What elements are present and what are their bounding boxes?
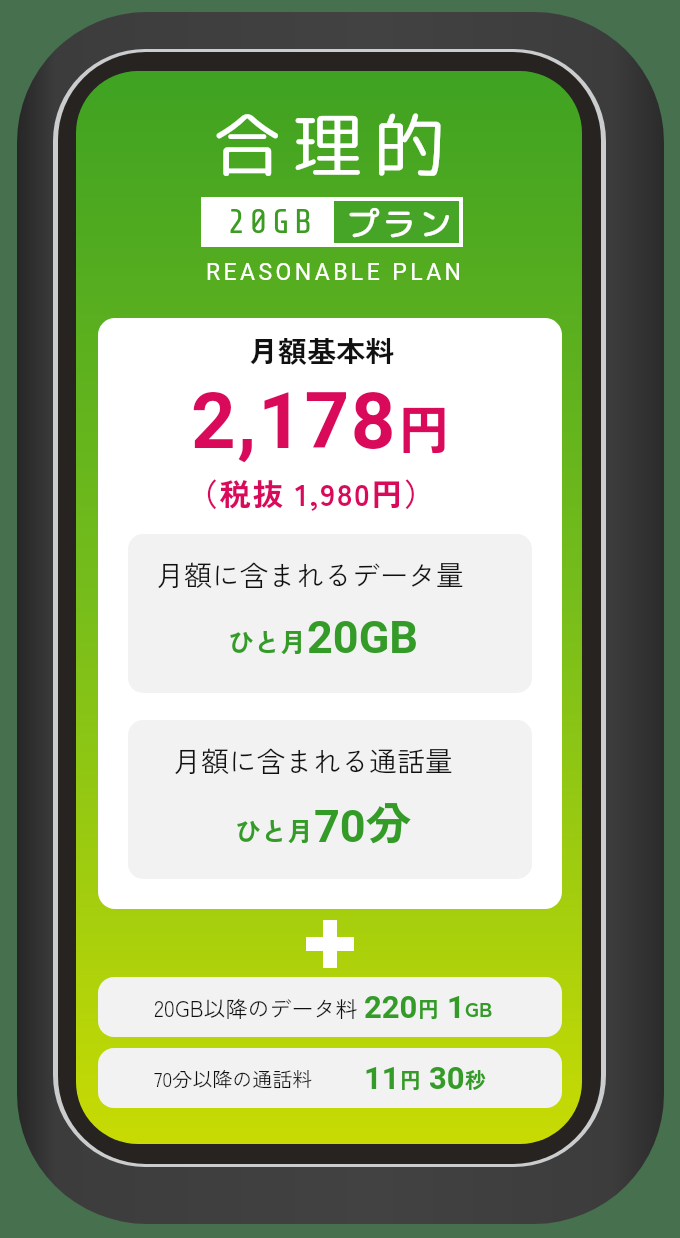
staticText: 月額に含まれる通話量 (173, 740, 454, 781)
staticText: 20GB (227, 203, 317, 241)
button[interactable]: 20GB以降のデータ料 (98, 977, 562, 1037)
button[interactable]: 月額に含まれる通話量 (128, 720, 532, 879)
staticText: 20GB以降のデータ料 (154, 991, 358, 1023)
staticText: GB (465, 993, 493, 1023)
staticText: プラン (345, 201, 453, 243)
staticText: （税抜 1,980円） (187, 470, 437, 515)
staticText: 20GB (307, 611, 419, 664)
staticText: ひと月 (235, 811, 314, 849)
button[interactable]: 月額に含まれるデータ量 (128, 534, 532, 693)
staticText: 2,178 (191, 376, 398, 467)
staticText: 70分以降の通話料 (154, 1064, 313, 1093)
staticText: 秒 (465, 1064, 486, 1094)
other: Plus (306, 920, 354, 968)
staticText: ひと月 (228, 622, 307, 660)
staticText: 合理的 (212, 96, 455, 194)
staticText: 分 (366, 788, 412, 853)
staticText: 月額基本料 (249, 328, 395, 370)
staticText: 30 (429, 1060, 465, 1096)
staticText: 220 (364, 989, 418, 1025)
staticText: 円 (418, 993, 439, 1023)
staticText: 円 (400, 1064, 421, 1094)
staticText: 月額に含まれるデータ量 (156, 554, 465, 595)
button[interactable]: 70分以降の通話料 (98, 1048, 562, 1108)
staticText: 70 (314, 800, 366, 853)
staticText: 1 (447, 989, 465, 1025)
staticText: 円 (398, 389, 451, 464)
staticText: 11 (364, 1060, 400, 1096)
staticText: REASONABLE PLAN (206, 259, 465, 286)
